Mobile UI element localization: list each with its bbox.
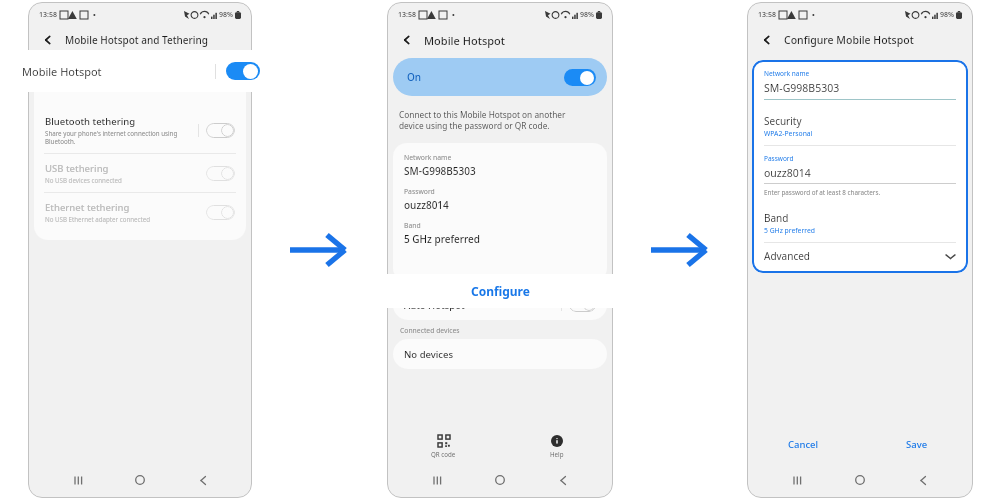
staticText: Connect to this Mobile Hotspot on anothe…	[399, 109, 566, 132]
button[interactable]: Security	[764, 114, 956, 138]
staticText: Save	[906, 438, 928, 451]
button[interactable]: QR code	[427, 431, 460, 462]
staticText: Help	[550, 450, 564, 458]
button[interactable]: Ethernet tethering	[34, 193, 246, 231]
staticText: Band	[404, 221, 421, 230]
button[interactable]: Recent apps	[424, 467, 450, 493]
button[interactable]: Cancel	[774, 433, 833, 456]
staticText: 5 GHz preferred	[404, 232, 480, 246]
staticText: USB tethering	[45, 162, 109, 175]
button[interactable]: Mobile Hotspot	[8, 50, 278, 92]
button[interactable]: Advanced	[764, 243, 956, 269]
staticText: 13:58	[39, 10, 57, 20]
staticText: No devices	[404, 348, 454, 361]
staticText: ouzz8014	[404, 198, 449, 212]
button[interactable]: Configure	[366, 274, 635, 308]
staticText: Mobile Hotspot	[22, 64, 102, 79]
staticText: Share your phone's internet connection u…	[45, 129, 178, 145]
staticText: SM-G998B5303	[404, 164, 476, 178]
button[interactable]: USB tethering	[34, 154, 246, 192]
staticText: Password	[404, 187, 435, 196]
staticText: Password	[764, 154, 794, 163]
staticText: Advanced	[764, 249, 810, 263]
staticText: No USB Ethernet adapter connected	[45, 215, 151, 223]
staticText: 98%	[580, 10, 594, 20]
staticText: WPA2-Personal	[764, 129, 813, 138]
button[interactable]: Back	[910, 467, 936, 493]
staticText: Cancel	[788, 438, 819, 451]
staticText: QR code	[431, 450, 456, 458]
staticText: Configure Mobile Hotspot	[784, 33, 914, 47]
staticText: Band	[764, 211, 789, 225]
staticText: 98%	[219, 10, 233, 20]
staticText: Enter password of at least 8 characters.	[764, 188, 881, 197]
button[interactable]: Back	[190, 467, 216, 493]
button[interactable]: On	[393, 58, 607, 96]
button[interactable]: Recent apps	[65, 467, 91, 493]
staticText: 98%	[940, 10, 954, 20]
staticText: Mobile Hotspot	[424, 33, 506, 48]
staticText: 13:58	[398, 10, 416, 20]
staticText: 5 GHz preferred	[764, 226, 815, 235]
button[interactable]: Back	[757, 30, 777, 50]
staticText: Ethernet tethering	[45, 201, 130, 214]
staticText: Network name	[404, 153, 452, 162]
staticText: Connected devices	[400, 326, 460, 335]
button[interactable]: Back	[550, 467, 576, 493]
button[interactable]: Home	[127, 467, 153, 493]
staticText: Network name	[764, 69, 810, 78]
staticText: Configure	[471, 283, 530, 299]
button[interactable]: No devices	[393, 339, 607, 369]
staticText: ouzz8014	[764, 166, 811, 180]
staticText: Mobile Hotspot and Tethering	[65, 33, 208, 47]
button[interactable]: Back	[397, 30, 417, 50]
staticText: No USB devices connected	[45, 176, 122, 184]
button[interactable]: Recent apps	[784, 467, 810, 493]
button[interactable]: Bluetooth tethering	[34, 107, 246, 153]
staticText: On	[407, 70, 422, 84]
staticText: Security	[764, 114, 802, 128]
staticText: Auto Hotspot	[404, 299, 465, 312]
button[interactable]: Band	[764, 211, 956, 235]
button[interactable]: Auto Hotspot	[393, 290, 607, 320]
staticText: SM-G998B5303	[764, 81, 840, 95]
button[interactable]: Help	[546, 431, 568, 462]
button[interactable]: Home	[487, 467, 513, 493]
button[interactable]: Back	[38, 30, 58, 50]
button[interactable]: Save	[892, 433, 942, 456]
button[interactable]: Home	[847, 467, 873, 493]
staticText: Bluetooth tethering	[45, 115, 136, 128]
staticText: 13:58	[758, 10, 776, 20]
